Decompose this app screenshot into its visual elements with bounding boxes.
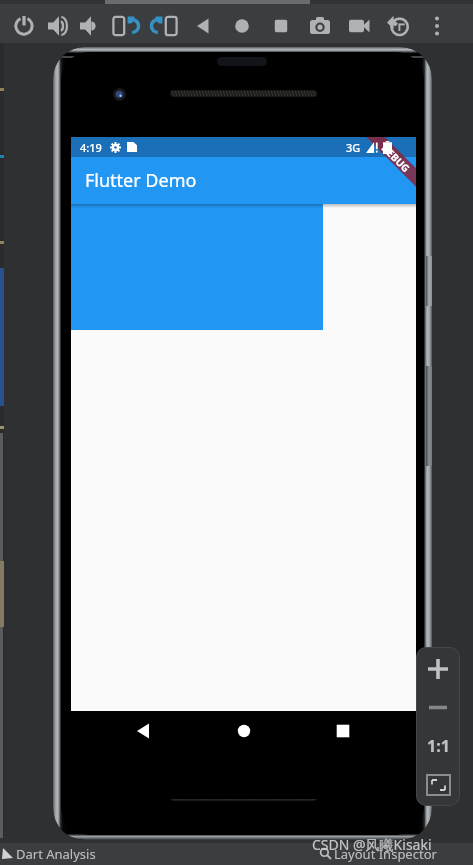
staticText: DEBUG [379, 141, 413, 175]
button[interactable]: Overview [265, 10, 297, 42]
button[interactable]: Recents [325, 713, 361, 749]
button[interactable]: Home [226, 713, 262, 749]
button[interactable]: Reset [382, 10, 414, 42]
button[interactable]: Zoom out [416, 691, 460, 723]
button[interactable]: Record screen [343, 10, 375, 42]
button[interactable]: Rotate right [149, 10, 181, 42]
button[interactable]: More [421, 10, 453, 42]
button[interactable]: Home [226, 10, 258, 42]
staticText: 3G [346, 140, 361, 155]
button[interactable] [71, 204, 323, 330]
button[interactable]: Back [125, 713, 161, 749]
staticText: Flutter Demo [85, 168, 197, 193]
button[interactable]: 1:1 [416, 729, 460, 763]
button[interactable]: Dart Analysis [16, 845, 96, 863]
button[interactable]: Zoom in [416, 649, 460, 689]
staticText: 1:1 [427, 735, 450, 757]
button[interactable]: Back [187, 10, 219, 42]
button[interactable]: Layout Inspector [334, 845, 437, 863]
button[interactable]: Volume down [74, 10, 106, 42]
button[interactable]: Rotate left [109, 10, 141, 42]
button[interactable]: Volume up [42, 10, 74, 42]
button[interactable]: Power [8, 10, 40, 42]
staticText: 4:19 [80, 140, 102, 155]
button[interactable]: Screenshot [304, 10, 336, 42]
staticText: CSDN @风曦Kisaki [312, 835, 432, 854]
button[interactable]: Fit to screen [416, 767, 460, 803]
